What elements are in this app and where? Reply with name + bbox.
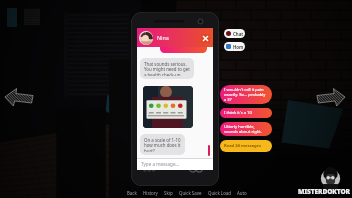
staticText: Type a message...	[141, 161, 180, 167]
button[interactable]: Quick Load	[205, 190, 234, 196]
staticText: Chat	[233, 31, 243, 37]
staticText: Home	[233, 44, 243, 50]
staticText: That sounds serious. You might need to g…	[144, 61, 190, 76]
staticText: I think it's a 10	[224, 110, 252, 116]
button[interactable]: Chat	[224, 29, 245, 38]
button[interactable]: Auto	[234, 190, 250, 196]
button[interactable]: Read 24 messages	[220, 140, 272, 152]
button[interactable]: Utterly horrible, sounds about right.	[220, 122, 272, 136]
staticText: On a scale of 1-10 how much does it hurt…	[144, 137, 181, 152]
button[interactable]: Skip	[161, 190, 176, 196]
staticText: Nina	[157, 34, 169, 41]
button[interactable]: I wouldn't call it pain exactly. So... p…	[220, 85, 272, 104]
button[interactable]: I think it's a 10	[220, 108, 272, 118]
button[interactable]: Home	[224, 42, 245, 51]
button[interactable]: Next	[316, 86, 346, 111]
button[interactable]: Back	[124, 190, 140, 196]
button[interactable]: History	[140, 190, 161, 196]
staticText: MISTERDOKTOR	[298, 187, 350, 196]
button[interactable]: Previous	[4, 86, 34, 111]
button[interactable]: Quick Save	[176, 190, 205, 196]
staticText: I wouldn't call it pain exactly. So... p…	[224, 87, 266, 102]
button[interactable]: Close chat	[201, 34, 210, 43]
staticText: Utterly horrible, sounds about right.	[224, 124, 262, 134]
staticText: Read 24 messages	[224, 143, 262, 149]
